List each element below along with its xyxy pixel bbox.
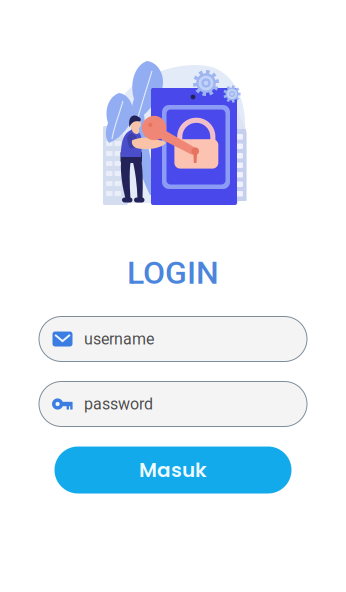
button[interactable]: username: [39, 316, 307, 361]
button[interactable]: password: [39, 381, 307, 426]
staticText: LOGIN: [127, 254, 219, 291]
staticText: Masuk: [139, 456, 207, 484]
staticText: password: [84, 395, 153, 413]
staticText: username: [84, 330, 154, 348]
button[interactable]: Masuk: [54, 446, 291, 493]
